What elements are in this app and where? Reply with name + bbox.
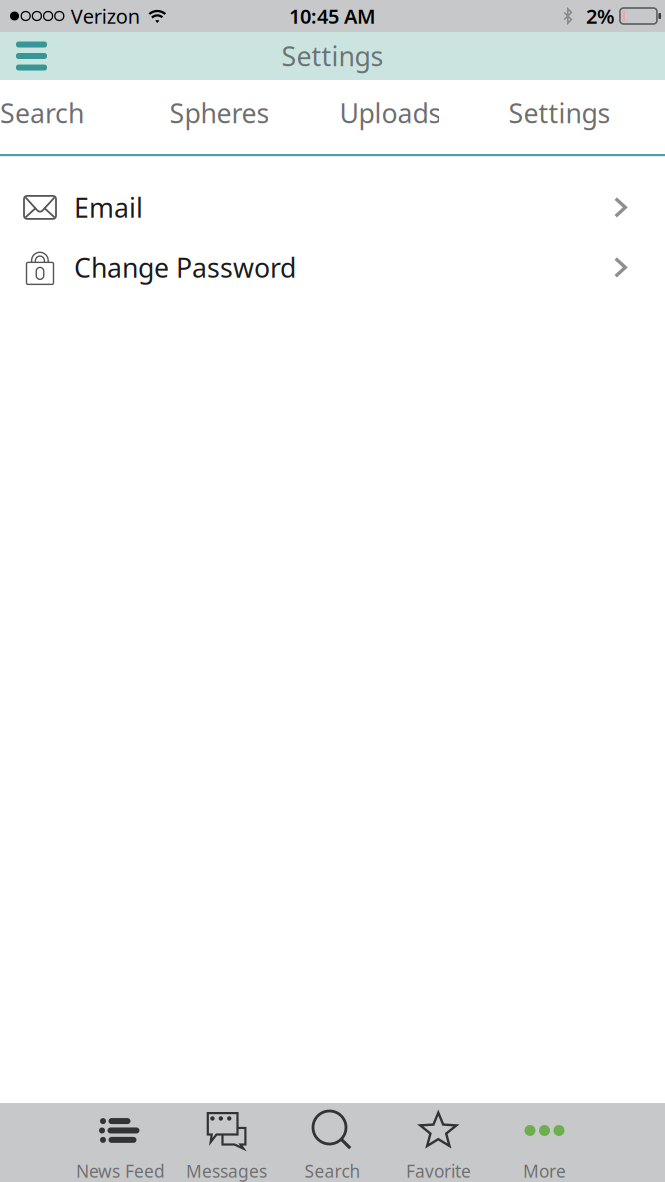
staticText: Spheres [169,95,269,131]
staticText: Email [74,190,143,225]
button[interactable]: Uploads [268,80,439,154]
staticText: 10:45 AM [289,3,376,29]
button[interactable]: Spheres [84,80,268,154]
staticText: Favorite [406,1159,471,1182]
staticText: Settings [508,95,610,131]
button[interactable]: Menu [0,32,63,80]
staticText: Uploads [339,95,441,131]
button[interactable]: Email [0,177,665,237]
staticText: Messages [186,1159,267,1182]
staticText: Search [304,1159,360,1182]
button[interactable]: News Feed [67,1103,173,1182]
staticText: 2% [586,3,615,29]
button[interactable]: Search [0,80,84,154]
staticText: Search [0,95,84,131]
button[interactable]: Messages [173,1103,279,1182]
staticText: Verizon [71,3,140,29]
staticText: Change Password [74,250,296,285]
button[interactable]: Search [279,1103,385,1182]
staticText: Settings [281,38,383,74]
staticText: News Feed [76,1159,165,1182]
button[interactable]: More [491,1103,597,1182]
button[interactable]: Change Password [0,237,665,297]
button[interactable]: Favorite [385,1103,491,1182]
button[interactable]: Settings [439,80,609,154]
staticText: More [523,1159,566,1182]
